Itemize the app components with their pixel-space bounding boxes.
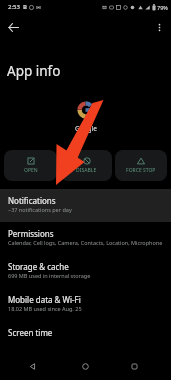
staticText: B: [23, 3, 27, 11]
staticText: Notifications: [8, 195, 56, 206]
staticText: App info: [7, 62, 61, 80]
staticText: Calendar, Cell logs, Camera, Contacts, L…: [8, 239, 163, 246]
button[interactable]: Recents: [124, 356, 144, 376]
staticText: 699 MB used in internal storage: [8, 272, 91, 279]
button[interactable]: FORCE STOP: [115, 150, 167, 181]
staticText: 79%: [157, 4, 168, 11]
button[interactable]: Home: [75, 356, 95, 376]
staticText: 18.02 MB used since Aug. 25: [8, 305, 82, 312]
button[interactable]: Screen time: [0, 321, 171, 354]
staticText: Screen time: [8, 327, 53, 338]
button[interactable]: More options: [148, 16, 170, 38]
button[interactable]: OPEN: [4, 150, 57, 181]
staticText: 2:53: [8, 3, 20, 11]
button[interactable]: Notifications: [0, 189, 171, 222]
staticText: Google: [75, 124, 97, 133]
staticText: DISABLE: [76, 167, 97, 174]
button[interactable]: Mobile data & Wi-Fi: [0, 288, 171, 321]
button[interactable]: Storage & cache: [0, 255, 171, 288]
staticText: Permissions: [8, 228, 54, 239]
staticText: OPEN: [24, 167, 38, 174]
staticText: ~37 notifications per day: [8, 206, 72, 213]
button[interactable]: Back: [2, 16, 24, 38]
button[interactable]: DISABLE: [60, 150, 112, 181]
staticText: Mobile data & Wi-Fi: [8, 294, 81, 305]
button[interactable]: Permissions: [0, 222, 171, 255]
staticText: Storage & cache: [8, 261, 69, 272]
button[interactable]: Back: [22, 356, 42, 376]
staticText: FORCE STOP: [126, 167, 156, 174]
